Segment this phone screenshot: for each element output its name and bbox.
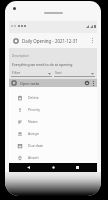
button[interactable]: More options <box>89 37 96 44</box>
staticText: Description <box>12 54 29 58</box>
button[interactable]: Open tasks <box>9 79 97 87</box>
button[interactable]: Assign <box>9 127 97 139</box>
button[interactable]: Back <box>23 163 34 172</box>
staticText: Everything we need to do at opening <box>12 62 73 67</box>
button[interactable]: Navigate up <box>12 37 19 44</box>
button[interactable]: Priority <box>9 103 97 115</box>
button[interactable]: Notes <box>9 115 97 127</box>
staticText: Attach <box>28 155 39 160</box>
staticText: Delete <box>28 95 39 100</box>
button[interactable]: Due date <box>9 139 97 151</box>
staticText: Due date <box>28 143 43 148</box>
button[interactable]: Recent apps <box>72 163 83 172</box>
button[interactable]: Home <box>48 163 59 172</box>
button[interactable]: Filter <box>11 70 52 77</box>
staticText: Priority <box>28 107 40 112</box>
staticText: Sort <box>55 70 62 75</box>
staticText: Assign <box>28 131 39 136</box>
button[interactable]: Delete <box>9 91 97 103</box>
staticText: Daily Opening - 2021-12-31 <box>22 38 78 44</box>
staticText: Notes <box>28 119 38 124</box>
button[interactable]: Attach <box>9 151 97 163</box>
button[interactable]: Sort <box>54 70 95 77</box>
staticText: Open tasks <box>20 81 40 86</box>
staticText: Filter <box>12 70 21 75</box>
